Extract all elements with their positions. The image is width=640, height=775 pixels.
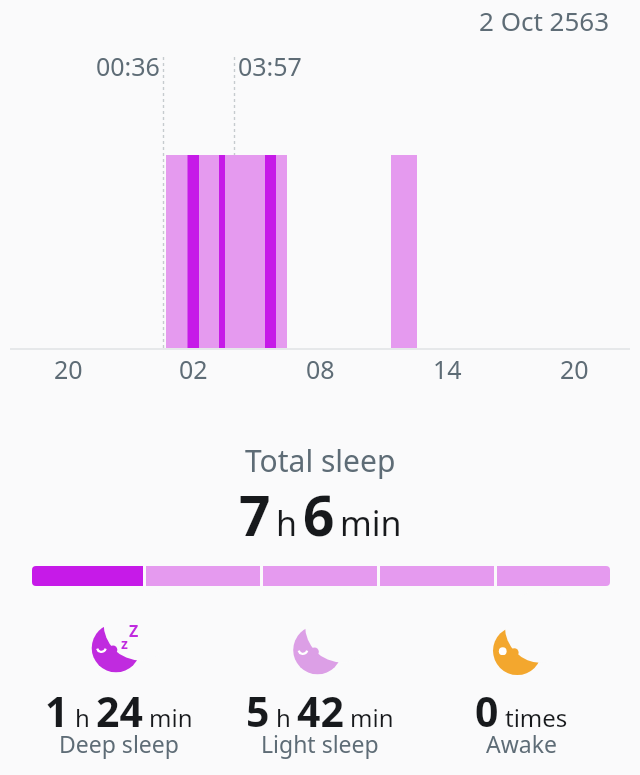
staticText: 20	[560, 352, 589, 386]
staticText: Awake	[486, 728, 557, 759]
staticText: z	[121, 634, 128, 653]
staticText: 0	[475, 683, 499, 739]
staticText: h	[276, 701, 291, 734]
staticText: 02	[179, 352, 208, 386]
staticText: h	[75, 701, 90, 734]
staticText: h	[276, 500, 298, 546]
staticText: 20	[54, 352, 83, 386]
staticText: 14	[433, 352, 462, 386]
staticText: 5	[246, 683, 270, 739]
staticText: Deep sleep	[59, 728, 179, 759]
staticText: 03:57	[238, 49, 302, 83]
staticText: min	[340, 500, 402, 546]
staticText: 08	[306, 352, 335, 386]
staticText: 2 Oct 2563	[479, 3, 610, 38]
staticText: 1	[45, 683, 69, 739]
staticText: times	[505, 701, 568, 734]
staticText: Z	[129, 620, 139, 642]
staticText: 7	[239, 477, 271, 552]
staticText: 00:36	[96, 49, 160, 83]
staticText: Light sleep	[261, 728, 379, 759]
staticText: 6	[303, 477, 335, 552]
staticText: min	[350, 701, 394, 734]
staticText: min	[149, 701, 193, 734]
staticText: 24	[96, 683, 143, 739]
staticText: 42	[297, 683, 344, 739]
staticText: Total sleep	[245, 440, 396, 481]
